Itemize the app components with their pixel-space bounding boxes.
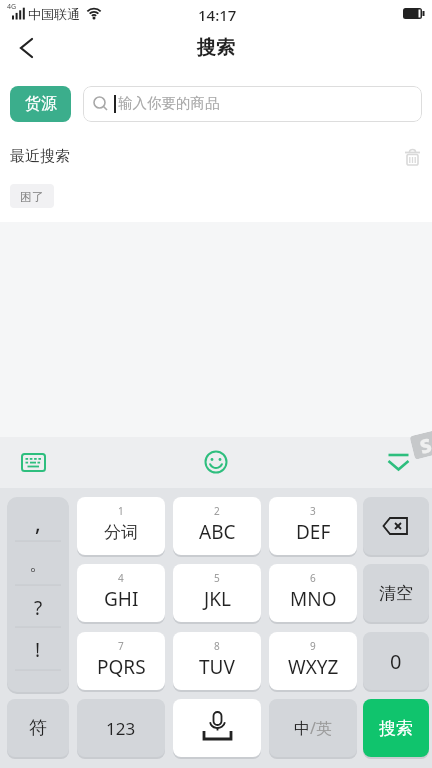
staticText: 货源: [25, 94, 57, 114]
staticText: 中国联通: [28, 6, 80, 22]
staticText: 9: [310, 639, 316, 653]
staticText: 分词: [104, 522, 138, 543]
staticText: PQRS: [97, 654, 146, 680]
staticText: 搜索: [379, 718, 413, 739]
staticText: ,: [35, 509, 41, 538]
staticText: 清空: [379, 583, 413, 604]
staticText: 1: [118, 504, 124, 518]
staticText: 8: [214, 639, 220, 653]
staticText: ?: [34, 595, 43, 621]
staticText: 6: [310, 571, 316, 585]
staticText: DEF: [296, 519, 331, 545]
staticText: ABC: [199, 519, 236, 545]
staticText: 5: [214, 571, 220, 585]
staticText: 4G: [7, 2, 17, 12]
staticText: 2: [214, 504, 220, 518]
staticText: S: [417, 432, 432, 458]
staticText: MNO: [290, 586, 337, 612]
staticText: JKL: [204, 586, 231, 612]
staticText: 中/英: [294, 717, 332, 739]
staticText: 0: [390, 648, 402, 675]
staticText: 3: [310, 504, 316, 518]
staticText: 困了: [20, 189, 44, 204]
staticText: TUV: [199, 654, 235, 680]
staticText: 输入你要的商品: [118, 94, 220, 112]
staticText: 7: [118, 639, 124, 653]
staticText: 。: [29, 553, 47, 576]
staticText: 4: [118, 571, 124, 585]
staticText: WXYZ: [288, 654, 339, 680]
staticText: GHI: [104, 586, 139, 612]
staticText: !: [35, 637, 41, 663]
staticText: 123: [106, 717, 136, 740]
staticText: 14:17: [198, 5, 237, 25]
staticText: 最近搜索: [10, 147, 70, 166]
staticText: 搜索: [197, 36, 235, 60]
staticText: 符: [29, 717, 47, 740]
